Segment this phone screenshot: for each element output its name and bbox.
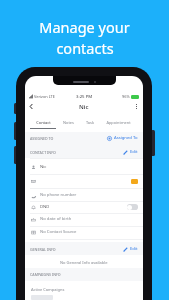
- staticText: Active Campaigns: [31, 287, 65, 292]
- staticText: Verizon LTE: [34, 94, 55, 99]
- button[interactable]: Contact: [30, 117, 57, 128]
- button[interactable]: [30, 175, 138, 187]
- button[interactable]: Assigned To: [107, 135, 138, 141]
- button[interactable]: DND: [30, 201, 138, 213]
- button[interactable]: Edit: [123, 149, 138, 155]
- staticText: contacts: [56, 38, 114, 58]
- staticText: Edit: [130, 149, 138, 155]
- staticText: Edit: [130, 246, 138, 252]
- staticText: 96%: [122, 94, 130, 99]
- staticText: Manage your: [39, 17, 130, 37]
- button[interactable]: More options: [130, 100, 143, 113]
- button[interactable]: Task: [80, 117, 100, 128]
- staticText: No General Info available: [60, 260, 108, 265]
- button[interactable]: Notes: [57, 117, 80, 128]
- button[interactable]: Back: [25, 100, 38, 113]
- button[interactable]: Edit: [123, 246, 138, 252]
- staticText: Nic: [40, 164, 47, 170]
- staticText: No date of birth: [40, 216, 72, 222]
- button[interactable]: No Contact Source: [30, 226, 138, 238]
- button[interactable]: No phone number: [30, 189, 138, 201]
- button[interactable]: No date of birth: [30, 213, 138, 225]
- button[interactable]: Appointment: [100, 117, 137, 128]
- staticText: Assigned To: [114, 135, 138, 141]
- staticText: CONTACT INFO: [30, 150, 56, 155]
- staticText: CAMPAIGNS INFO: [30, 272, 61, 277]
- staticText: No Contact Source: [40, 229, 77, 235]
- staticText: No phone number: [40, 192, 77, 198]
- staticText: DND: [40, 204, 50, 210]
- staticText: Contact: [36, 120, 51, 125]
- staticText: Nic: [79, 103, 89, 111]
- staticText: 3:25 PM: [76, 93, 93, 99]
- staticText: Task: [86, 120, 94, 125]
- staticText: Appointment: [106, 120, 131, 125]
- staticText: GENERAL INFO: [30, 247, 56, 252]
- staticText: Notes: [63, 120, 74, 125]
- staticText: ASSIGNED TO: [30, 136, 54, 141]
- button[interactable]: Nic: [30, 161, 138, 173]
